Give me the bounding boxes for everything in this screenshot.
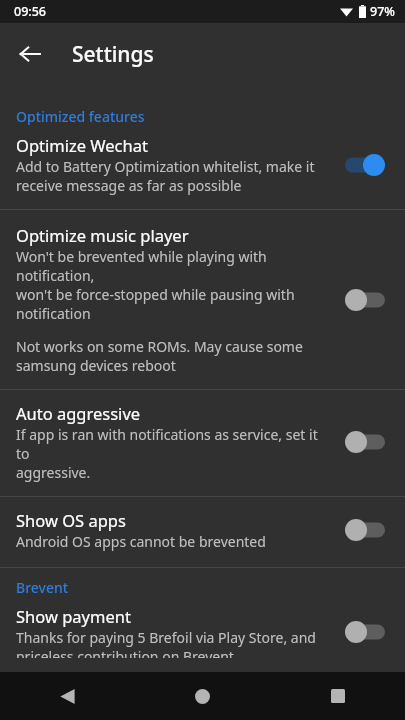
button[interactable]: Toggle off	[339, 425, 391, 459]
staticText: Thanks for paying 5 Brefoil via Play Sto…	[16, 628, 316, 658]
button[interactable]: Toggle on	[339, 148, 391, 182]
staticText: If app is ran with notifications as serv…	[16, 425, 329, 482]
button[interactable]: Toggle off	[339, 615, 391, 649]
staticText: Add to Battery Optimization whitelist, m…	[16, 157, 315, 195]
staticText: Show OS apps	[16, 509, 126, 531]
staticText: Optimize Wechat	[16, 134, 148, 156]
button[interactable]: Toggle off	[339, 513, 391, 547]
button[interactable]: Optimize Wechat	[0, 128, 405, 209]
staticText: Show payment	[16, 605, 131, 627]
staticText: Android OS apps cannot be brevented	[16, 532, 266, 551]
button[interactable]: Auto aggressive	[0, 390, 405, 496]
staticText: Settings	[72, 40, 154, 69]
staticText: Optimized features	[16, 107, 145, 126]
button[interactable]: Back	[8, 32, 52, 76]
button[interactable]: Toggle off	[339, 283, 391, 317]
button[interactable]: Back	[0, 672, 135, 720]
button[interactable]: Optimize music player	[0, 210, 405, 389]
button[interactable]: Home	[135, 672, 270, 720]
staticText: 09:56	[14, 3, 47, 20]
button[interactable]: Show payment	[0, 599, 405, 672]
button[interactable]: Show OS apps	[0, 497, 405, 567]
staticText: Not works on some ROMs. May cause some s…	[16, 337, 303, 375]
staticText: Optimize music player	[16, 224, 189, 246]
staticText: Won't be brevented while playing with no…	[16, 247, 329, 323]
staticText: Auto aggressive	[16, 402, 141, 424]
button[interactable]: Recent apps	[270, 672, 405, 720]
staticText: 97%	[370, 3, 395, 20]
staticText: Brevent	[16, 578, 69, 597]
